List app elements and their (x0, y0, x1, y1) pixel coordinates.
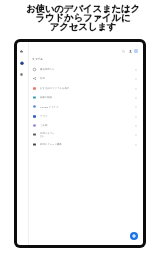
button[interactable]: 設定 (20, 73, 23, 76)
button[interactable]: 検索 (122, 50, 125, 53)
staticText: ごみ箱 (40, 124, 48, 127)
button[interactable]: おすすめのファイルを表示 (17, 84, 143, 93)
button[interactable]: ごみ箱 (17, 121, 143, 130)
button[interactable]: ファイル (20, 61, 24, 65)
button[interactable]: 画像と動画 (17, 93, 143, 102)
staticText: 外部ストレージ機器 (40, 143, 62, 146)
staticText: お使いのデバイスまたはク ラウドからファイルに アクセスします (6, 3, 160, 33)
button[interactable]: 内部メモリー (17, 130, 143, 139)
staticText: 内部メモリー (40, 132, 55, 135)
staticText: ファイル (32, 57, 44, 60)
button[interactable]: 共有 (17, 74, 143, 83)
button[interactable]: メニュー (20, 50, 23, 53)
staticText: アプリ (40, 115, 48, 118)
button[interactable]: アプリ (17, 112, 143, 121)
button[interactable]: プロフィール (134, 49, 138, 53)
staticText: 最近使用した (40, 68, 55, 71)
button[interactable]: 外部ストレージ機器 (17, 140, 143, 149)
staticText: 空き (40, 135, 45, 138)
button[interactable]: 新規作成 (130, 232, 138, 240)
staticText: 画像と動画 (40, 96, 53, 99)
button[interactable]: アカウント (129, 50, 132, 53)
button[interactable]: Google ドライブ (17, 102, 143, 111)
staticText: おすすめのファイルを表示 (40, 87, 70, 90)
button[interactable]: 最近使用した (17, 65, 143, 74)
staticText: Google ドライブ (40, 105, 59, 108)
staticText: 共有 (40, 77, 45, 80)
